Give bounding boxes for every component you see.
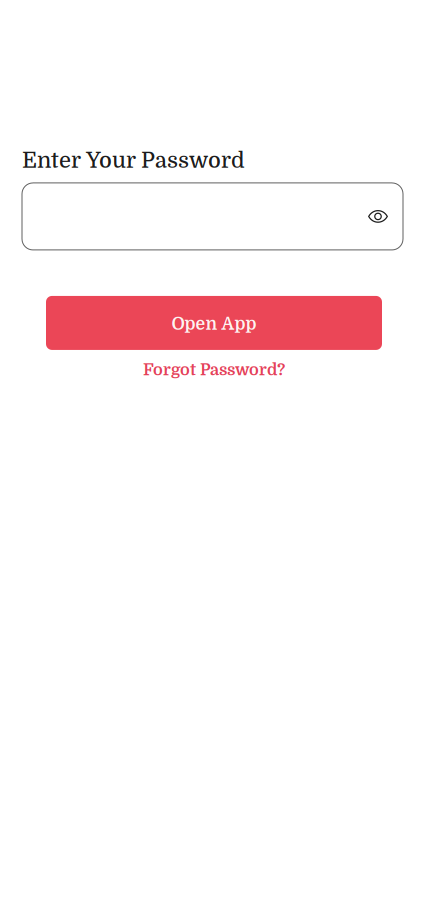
staticText: Forgot Password? <box>143 361 285 379</box>
staticText: Enter Your Password <box>22 148 245 173</box>
button[interactable]: Forgot Password? <box>46 358 382 382</box>
button[interactable]: Open App <box>46 296 382 350</box>
button[interactable]: Show password <box>358 196 398 236</box>
staticText: Open App <box>171 314 256 334</box>
